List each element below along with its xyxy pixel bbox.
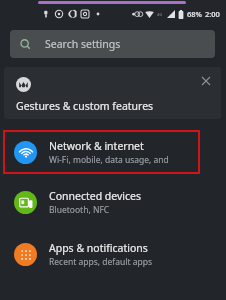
staticText: Apps & notifications [49, 241, 148, 255]
button[interactable]: Dismiss suggestion [198, 73, 214, 89]
staticText: 2:00 [205, 9, 220, 19]
staticText: Connected devices [49, 189, 142, 203]
staticText: 68% [187, 9, 202, 19]
button[interactable]: Connected devices [0, 182, 226, 222]
button[interactable]: Apps & notifications [0, 234, 226, 274]
staticText: Bluetooth, NFC [49, 204, 110, 216]
button[interactable]: Dismiss suggestion [4, 67, 221, 119]
staticText: Search settings [45, 37, 121, 51]
button[interactable]: Network & internet [5, 132, 198, 172]
staticText: 4G [157, 12, 163, 17]
staticText: Network & internet [49, 139, 144, 153]
staticText: Gestures & custom features [16, 99, 154, 113]
button[interactable]: Search settings [10, 30, 215, 58]
staticText: Wi-Fi, mobile, data usage, and hotspot [49, 154, 198, 166]
staticText: Recent apps, default apps [49, 256, 153, 268]
